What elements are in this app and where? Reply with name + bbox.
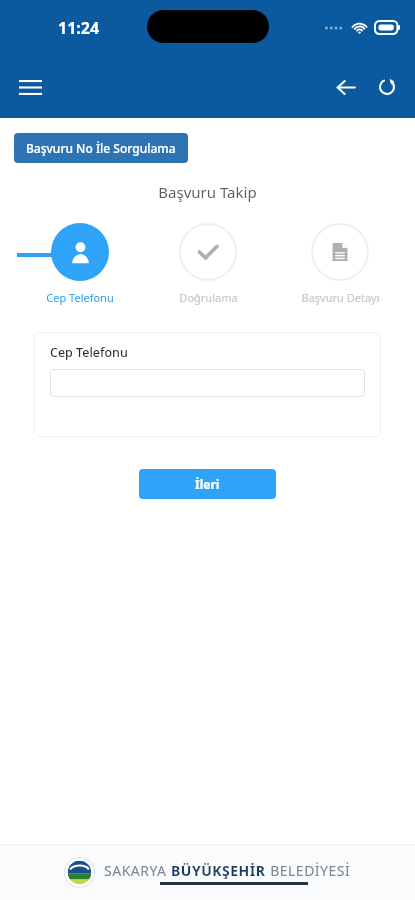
button[interactable]: Başvuru No İle Sorgulama xyxy=(14,133,188,163)
staticText: Doğrulama xyxy=(179,290,238,305)
staticText: Başvuru Detayı xyxy=(301,290,380,305)
button[interactable]: Doğrulama xyxy=(146,223,270,305)
button[interactable]: Cep Telefonu xyxy=(18,223,142,305)
staticText: Başvuru Takip xyxy=(0,182,415,202)
staticText: BÜYÜKŞEHİR xyxy=(171,861,266,880)
staticText: İleri xyxy=(195,476,220,492)
button[interactable]: Başvuru Detayı xyxy=(278,223,402,305)
button[interactable]: Cep Telefonu input xyxy=(50,369,365,397)
button[interactable]: Refresh xyxy=(366,66,408,108)
staticText: Cep Telefonu xyxy=(50,344,128,361)
button[interactable]: Menu xyxy=(9,66,51,108)
staticText: Cep Telefonu xyxy=(46,290,114,305)
staticText: BELEDİYESİ xyxy=(266,861,351,880)
button[interactable]: İleri xyxy=(139,469,276,499)
staticText: SAKARYA xyxy=(104,861,171,880)
staticText: 11:24 xyxy=(58,17,100,39)
button[interactable]: Back xyxy=(324,66,366,108)
staticText: Başvuru No İle Sorgulama xyxy=(26,140,176,156)
